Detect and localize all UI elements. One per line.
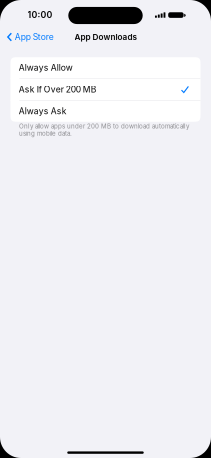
button[interactable]: Always Ask <box>10 101 200 122</box>
button[interactable]: Ask If Over 200 MB <box>10 79 200 100</box>
staticText: App Downloads <box>74 32 136 42</box>
staticText: 10:00 <box>28 9 53 20</box>
staticText: Only allow apps under 200 MB to download… <box>19 122 189 137</box>
button[interactable]: Always Allow <box>10 57 200 78</box>
staticText: Always Ask <box>19 106 67 116</box>
button[interactable]: App Store <box>0 27 60 47</box>
staticText: Always Allow <box>19 63 73 73</box>
staticText: App Store <box>15 32 54 42</box>
staticText: Ask If Over 200 MB <box>19 84 97 95</box>
